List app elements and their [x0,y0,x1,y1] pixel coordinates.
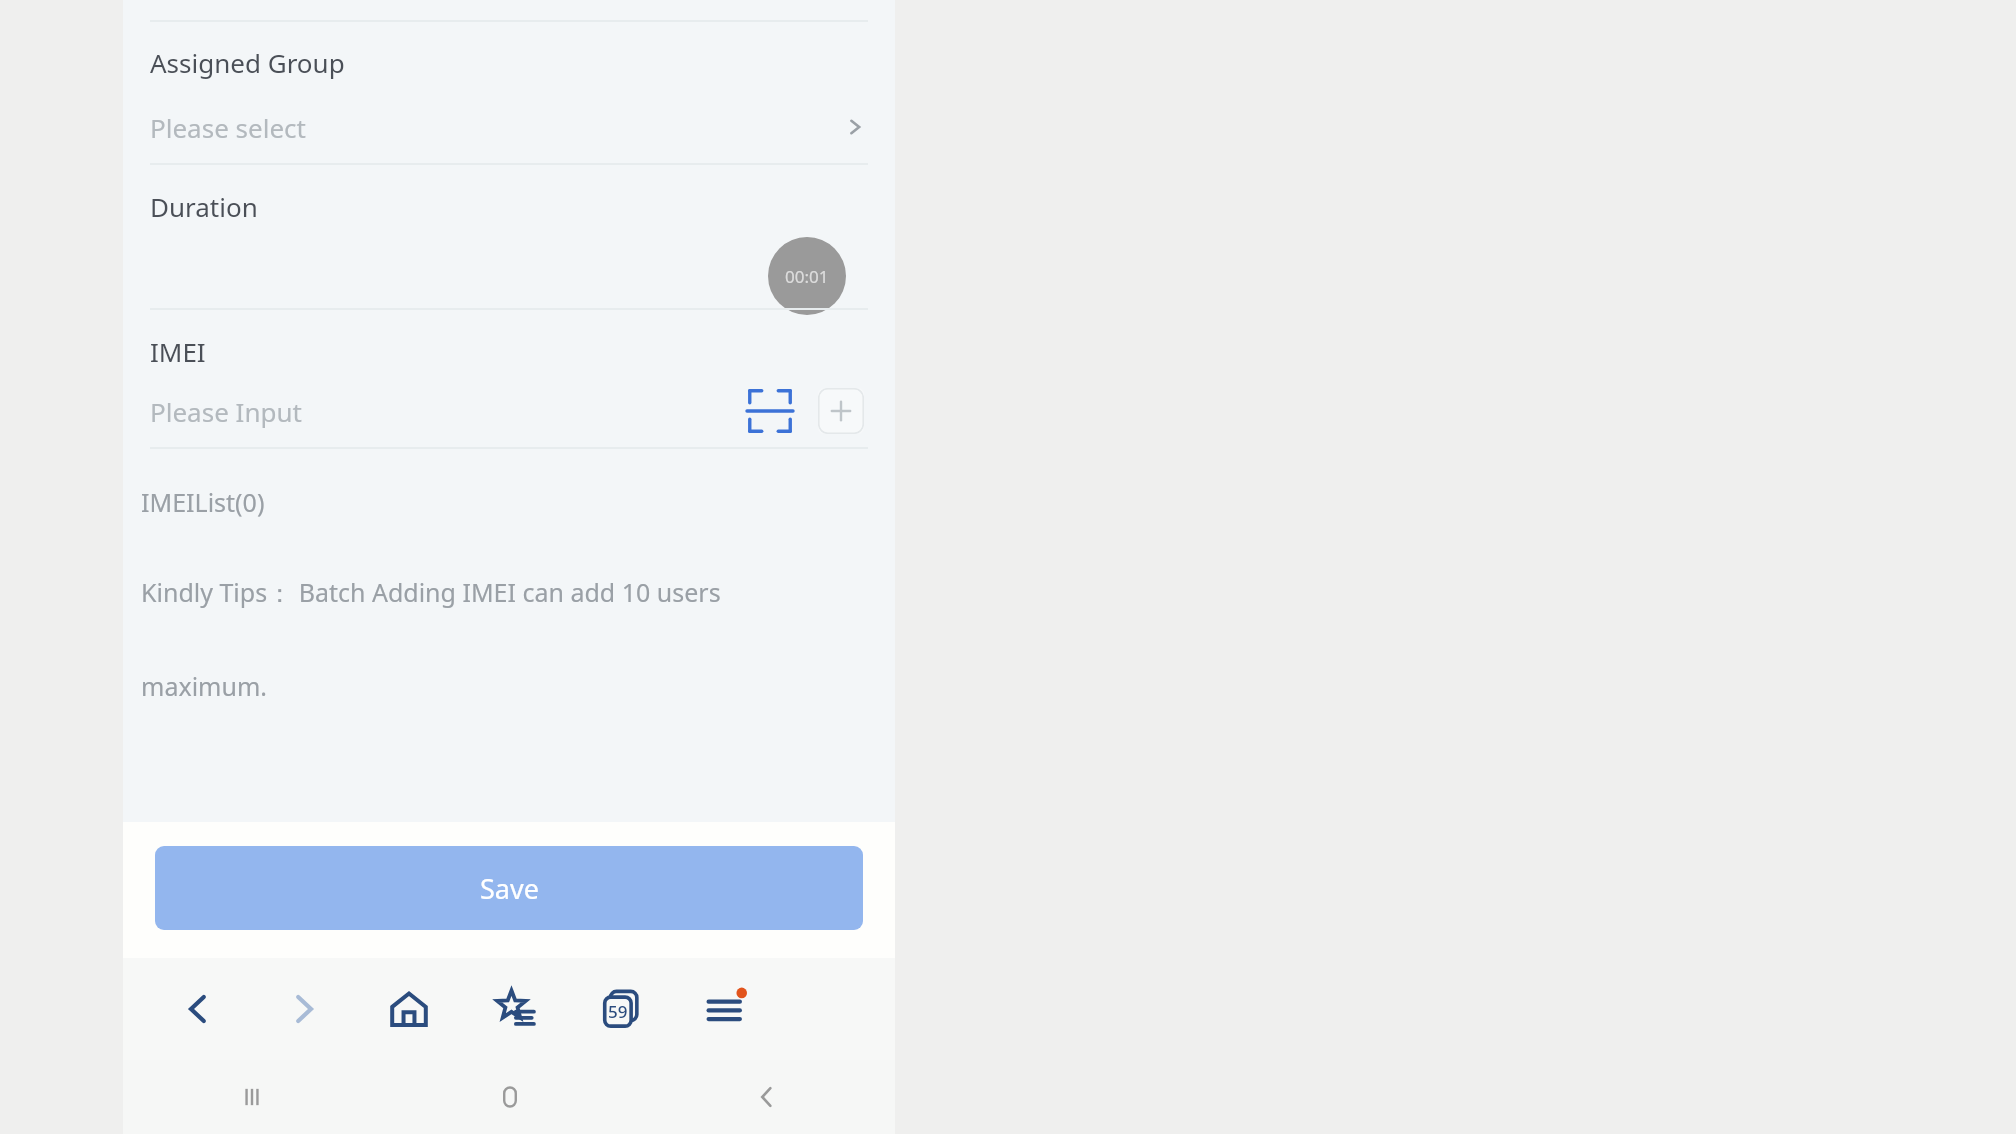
button[interactable]: Menu [689,958,765,1060]
staticText: Please Input [150,394,302,429]
button[interactable]: Add IMEI [818,388,864,434]
staticText: Save [480,870,539,907]
button[interactable]: Forward [265,958,341,1060]
staticText: Please select [150,110,306,145]
button[interactable]: Home [381,1060,638,1134]
button[interactable]: Bookmarks [477,958,553,1060]
button[interactable]: Recent apps [123,1060,381,1134]
button[interactable]: Back [161,958,237,1060]
staticText: IMEIList(0) [141,485,265,519]
button[interactable]: Tabs, 59 open [583,958,659,1060]
staticText: Kindly Tips： Batch Adding IMEI can add 1… [141,575,821,703]
staticText: 00:01 [785,265,829,288]
staticText: Assigned Group [150,45,345,80]
staticText: Duration [150,189,258,224]
button[interactable]: Back [638,1060,895,1134]
staticText: IMEI [150,334,206,369]
button[interactable]: Recording timer [768,237,846,315]
button[interactable]: Please select [150,96,868,158]
staticText: 59 [608,1000,628,1023]
button[interactable]: Home [371,958,447,1060]
button[interactable]: Scan barcode [744,385,796,437]
button[interactable]: Save [155,846,863,930]
